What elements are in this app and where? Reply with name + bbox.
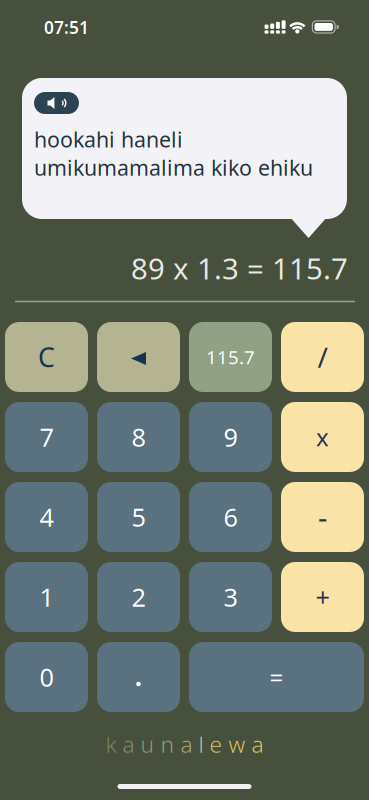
staticText: u <box>140 729 154 759</box>
button[interactable]: Speak <box>34 92 79 114</box>
staticText: - <box>318 497 327 536</box>
button[interactable]: C <box>5 322 88 392</box>
staticText: 4 <box>39 500 53 534</box>
staticText: 3 <box>223 580 237 614</box>
staticText: C <box>38 339 55 375</box>
staticText: 7 <box>39 420 53 454</box>
button[interactable]: / <box>281 322 364 392</box>
staticText: umikumamalima kiko ehiku <box>34 153 313 182</box>
staticText: 6 <box>223 500 237 534</box>
staticText: 9 <box>223 420 237 454</box>
button[interactable]: + <box>281 562 364 632</box>
staticText: 2 <box>131 580 145 614</box>
button[interactable]: 1 <box>5 562 88 632</box>
staticText: k <box>105 729 116 759</box>
button[interactable]: 9 <box>189 402 272 472</box>
button[interactable]: x <box>281 402 364 472</box>
staticText: hookahi haneli <box>34 125 183 153</box>
staticText: x <box>316 421 329 453</box>
button[interactable]: = <box>189 642 364 712</box>
staticText: a <box>251 729 263 759</box>
staticText: 115.7 <box>206 345 255 369</box>
button[interactable]: - <box>281 482 364 552</box>
staticText: + <box>315 580 329 614</box>
button[interactable]: 3 <box>189 562 272 632</box>
button[interactable]: 6 <box>189 482 272 552</box>
staticText: / <box>317 338 327 376</box>
staticText: 8 <box>131 420 145 454</box>
button[interactable]: 7 <box>5 402 88 472</box>
button[interactable]: 5 <box>97 482 180 552</box>
button[interactable]: Decimal point <box>97 642 180 712</box>
staticText: 89 x 1.3 = 115.7 <box>131 248 348 287</box>
button[interactable]: 0 <box>5 642 88 712</box>
staticText: n <box>160 729 174 759</box>
staticText: 1 <box>39 580 53 614</box>
staticText: 07:51 <box>44 16 89 39</box>
button[interactable]: 2 <box>97 562 180 632</box>
staticText: w <box>228 729 245 759</box>
staticText: = <box>269 661 283 693</box>
button[interactable]: 4 <box>5 482 88 552</box>
staticText: 0 <box>39 660 53 694</box>
staticText: a <box>122 729 134 759</box>
button[interactable]: Backspace <box>97 322 180 392</box>
staticText: e <box>209 729 222 759</box>
button[interactable]: 115.7 <box>189 322 272 392</box>
staticText: l <box>198 729 203 759</box>
staticText: 5 <box>131 500 145 534</box>
button[interactable]: 8 <box>97 402 180 472</box>
staticText: a <box>180 729 192 759</box>
